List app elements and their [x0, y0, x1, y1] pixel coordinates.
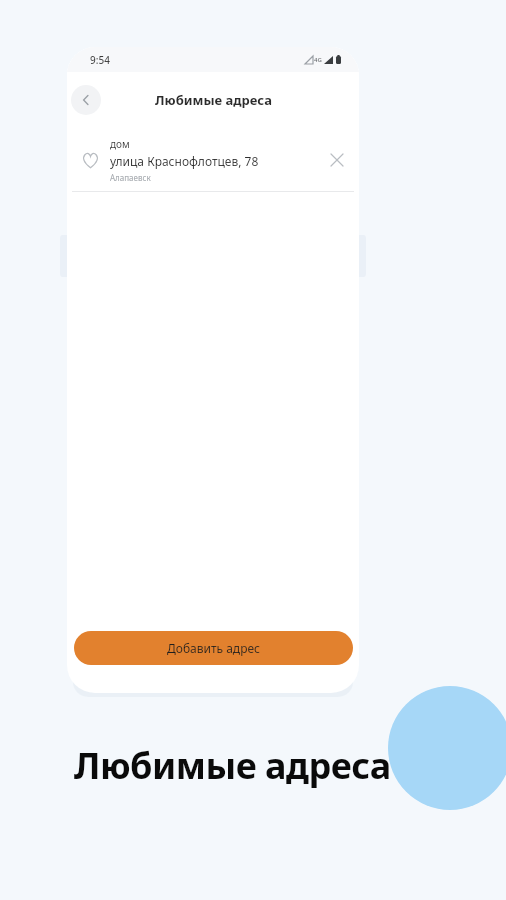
staticText: улица Краснофлотцев, 78: [110, 153, 259, 169]
staticText: 9:54: [90, 53, 110, 67]
staticText: Любимые адреса: [74, 741, 391, 790]
button[interactable]: Добавить адрес: [74, 631, 353, 665]
staticText: 4G: [314, 56, 322, 64]
button[interactable]: Избранное: [67, 128, 359, 191]
staticText: Любимые адреса: [155, 91, 272, 109]
staticText: Добавить адрес: [167, 640, 260, 656]
button[interactable]: Удалить: [320, 143, 354, 177]
staticText: Алапаевск: [110, 172, 151, 183]
staticText: дом: [110, 137, 130, 151]
button[interactable]: Назад: [71, 85, 101, 115]
button[interactable]: Избранное: [75, 145, 105, 175]
